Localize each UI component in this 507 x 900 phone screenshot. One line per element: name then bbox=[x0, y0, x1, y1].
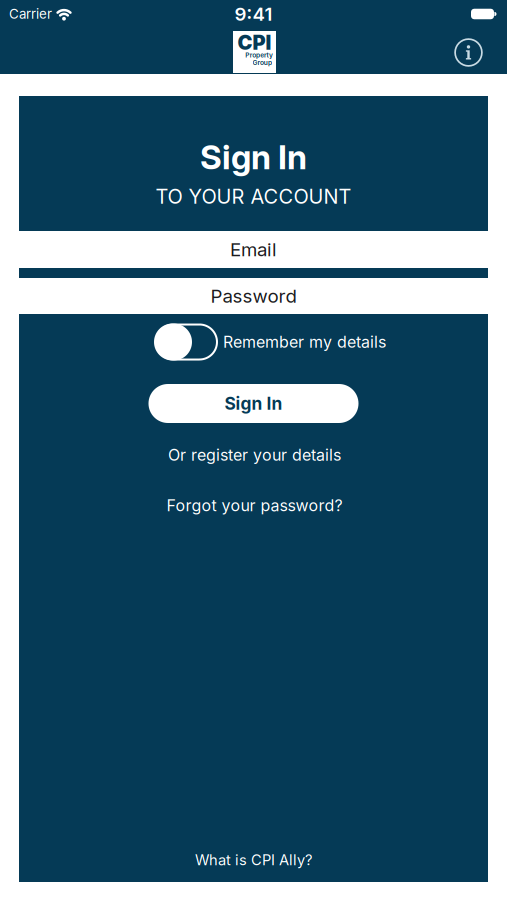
staticText: Email bbox=[230, 238, 277, 260]
button[interactable]: Remember my details bbox=[155, 323, 386, 360]
staticText: Or register your details bbox=[168, 446, 341, 464]
staticText: Remember my details bbox=[223, 333, 386, 351]
staticText: Sign In bbox=[200, 137, 307, 177]
staticText: Carrier bbox=[9, 6, 52, 22]
button[interactable]: Forgot your password? bbox=[166, 496, 342, 515]
staticText: Forgot your password? bbox=[166, 496, 342, 515]
button[interactable]: Sign In bbox=[148, 384, 358, 423]
button[interactable]: What is CPI Ally? bbox=[195, 851, 312, 869]
button[interactable]: Email bbox=[0, 231, 507, 268]
staticText: CPI bbox=[237, 31, 271, 54]
staticText: What is CPI Ally? bbox=[195, 851, 312, 869]
button[interactable]: Password bbox=[0, 278, 507, 314]
staticText: Property bbox=[237, 49, 281, 61]
staticText: TO YOUR ACCOUNT bbox=[155, 185, 351, 208]
staticText: Password bbox=[210, 285, 296, 307]
button[interactable]: Info bbox=[453, 37, 483, 67]
button[interactable]: Or register your details bbox=[168, 446, 341, 464]
staticText: 9:41 bbox=[234, 3, 272, 25]
staticText: Sign In bbox=[224, 393, 282, 414]
staticText: Group bbox=[246, 56, 278, 69]
